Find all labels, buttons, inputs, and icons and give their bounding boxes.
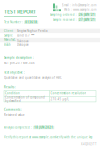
staticText: 013618 [25,20,37,24]
staticText: Qualitative and quantitative analysis of… [4,76,62,79]
staticText: solid U-7 *** [17,34,34,37]
staticText: 18 JUN 2021 [34,126,53,129]
staticText: 27 JAN '21 [79,18,95,21]
staticText: Dalcopan [17,43,29,46]
staticText: Sample [4,34,13,37]
staticText: Condition [5,91,20,95]
staticText: Batch [4,43,11,46]
staticText: Analysis completed : [4,126,32,129]
staticText: Test Number : [4,20,23,24]
staticText: E-mail : info@example.com [62,3,96,7]
staticText: Results : [4,85,16,89]
staticText: Web : www.example.com [64,8,96,11]
staticText: 270.45 µg/L [50,97,68,101]
staticText: Comments : [4,108,22,111]
staticText: M-1 pin-20 / site-346 [4,61,35,65]
staticText: TEST REPORT [4,8,36,15]
staticText: Sample description : [4,56,34,59]
staticText: Verify this report at www.example.com/ve… [4,135,92,139]
staticText: Manufacturer [4,38,16,45]
staticText: X4Q0G3TT [81,142,96,146]
staticText: Dalcopan [17,40,29,43]
staticText: Concentration resolution [50,91,86,95]
staticText: Singtex Yoghur Perdia [17,29,47,33]
staticText: Sampling ordered : [50,13,77,16]
staticText: 26 JAN '21 [79,13,95,16]
staticText: Retained value [4,113,25,117]
staticText: Concentration of compound by classified [5,96,45,103]
staticText: Test objective : [4,71,25,74]
staticText: Sample received : [53,18,77,21]
staticText: Client [4,29,13,33]
